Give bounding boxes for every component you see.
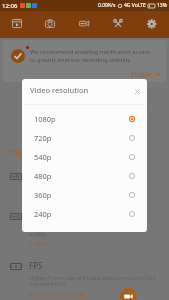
button[interactable]: 480p [22, 166, 147, 185]
staticText: Bitrate [29, 210, 55, 221]
staticText: Enable [131, 70, 152, 79]
button[interactable]: Resolution [0, 169, 169, 204]
staticText: 1080p [29, 193, 45, 200]
button[interactable]: Video [67, 11, 101, 38]
staticText: 5 Mbps [29, 240, 48, 247]
staticText: 13% [157, 2, 167, 9]
button[interactable]: Bitrate [0, 209, 169, 251]
button[interactable]: Close [129, 83, 145, 99]
button[interactable]: Record [120, 288, 137, 300]
button[interactable]: Screen recorder [0, 11, 33, 38]
button[interactable]: 1080p [22, 109, 147, 128]
staticText: 1080p [34, 114, 56, 124]
staticText: We recommend enabling notification acces… [30, 48, 152, 64]
button[interactable]: 720p [22, 128, 147, 147]
staticText: 720p [34, 133, 52, 143]
button[interactable]: 360p [22, 185, 147, 204]
button[interactable]: Settings [135, 11, 169, 38]
staticText: 12:06 [2, 2, 18, 10]
staticText: FPS [29, 260, 43, 271]
staticText: Higher frame rate will make videos smoot… [29, 274, 156, 288]
staticText: Higher bitrate means better quality [29, 224, 102, 238]
button[interactable]: 540p [22, 147, 147, 166]
button[interactable]: 240p [22, 204, 147, 223]
button[interactable]: FPS [0, 259, 169, 300]
staticText: 480p [34, 171, 52, 181]
staticText: 240p [34, 209, 52, 219]
button[interactable]: Camera [33, 11, 67, 38]
staticText: 0.09K/s [98, 2, 116, 9]
staticText: 4G VoLTE [124, 2, 146, 9]
staticText: Resolution [29, 170, 69, 181]
staticText: Video resolution [30, 85, 89, 95]
staticText: 540p [34, 152, 52, 162]
staticText: Auto (Recommended) [29, 290, 86, 297]
button[interactable]: Tools [101, 11, 135, 38]
button[interactable]: We recommend enabling notification acces… [3, 40, 166, 82]
staticText: Video [6, 147, 27, 157]
staticText: 360p [34, 190, 52, 200]
